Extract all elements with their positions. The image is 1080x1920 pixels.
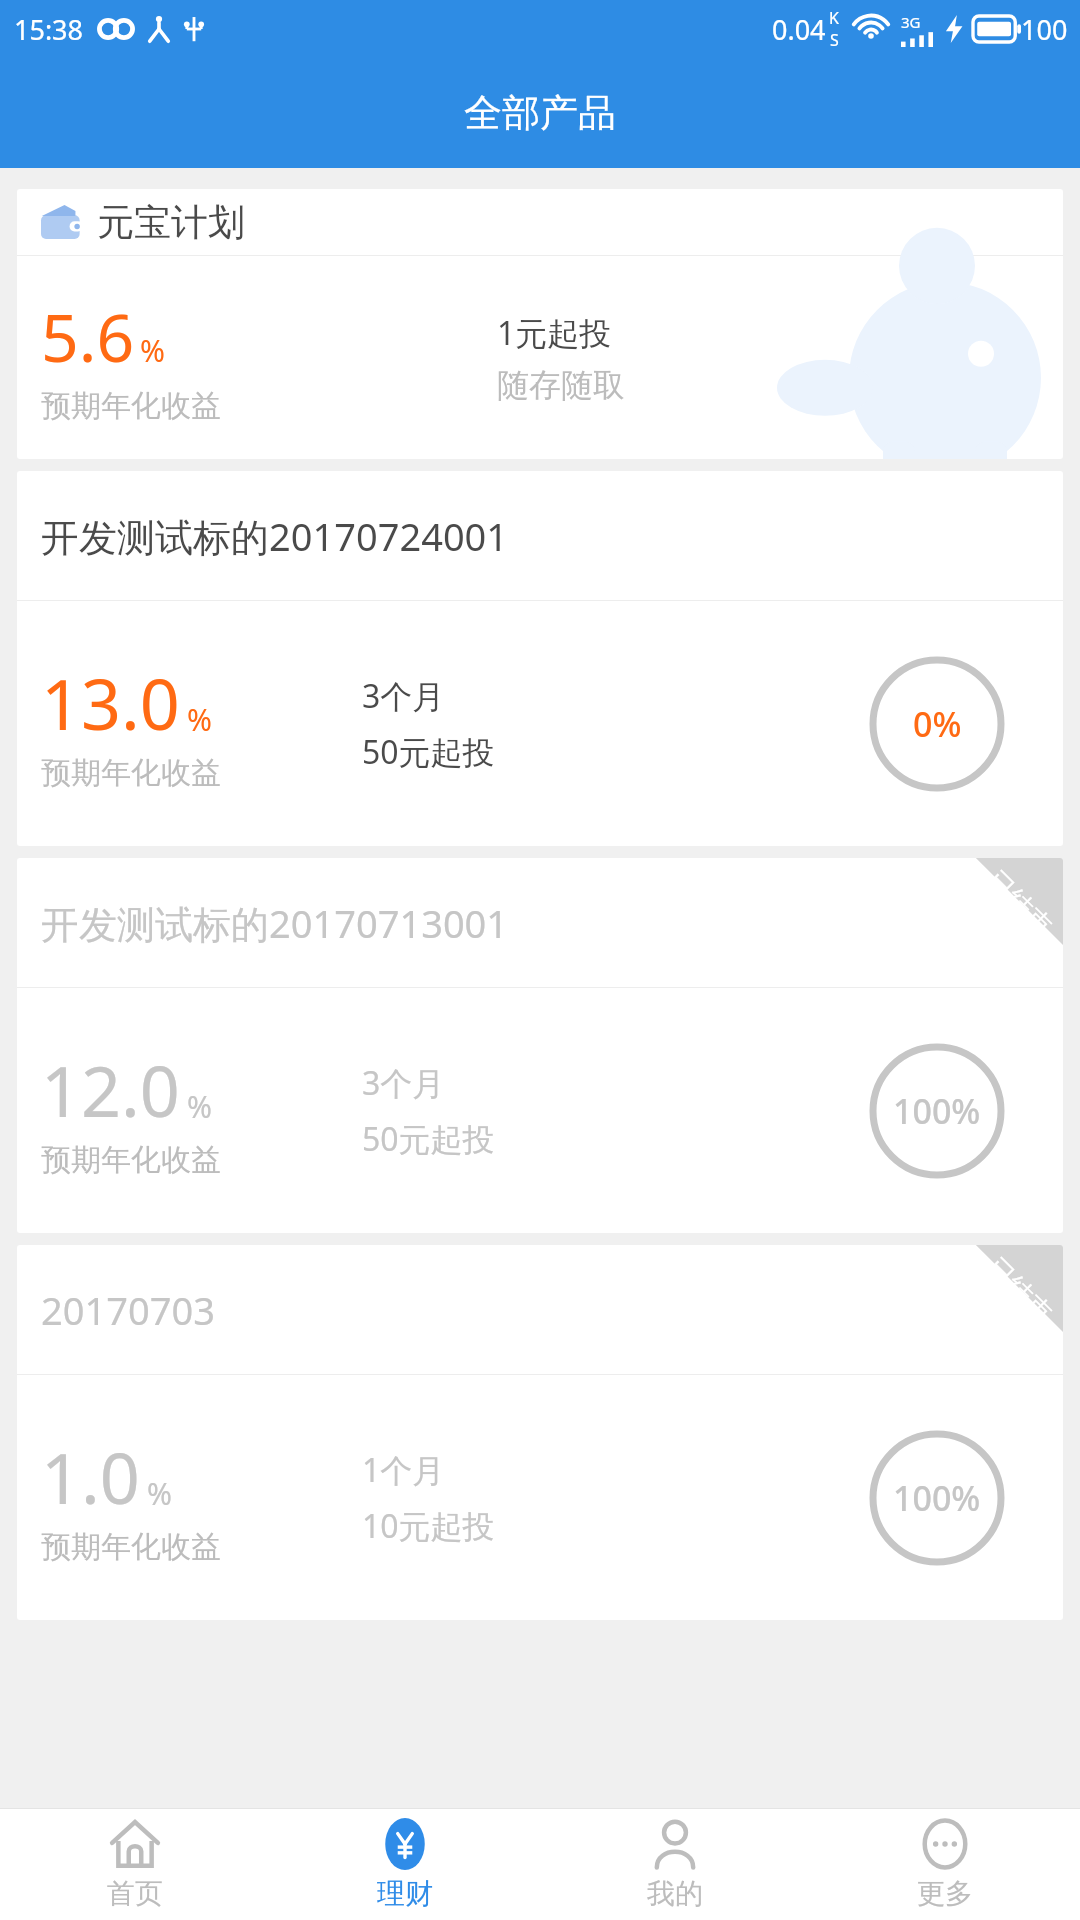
staticText: 0.04 <box>772 11 826 48</box>
staticText: 13.0 <box>41 655 180 750</box>
other: 理财 <box>379 1818 431 1870</box>
button[interactable]: 更多 <box>810 1809 1080 1920</box>
staticText: 1.0 <box>41 1429 140 1524</box>
staticText: 更多 <box>917 1876 973 1911</box>
staticText: % <box>187 1086 212 1127</box>
button[interactable]: 开发测试标的20170713001 <box>17 858 1063 1233</box>
staticText: 开发测试标的20170713001 <box>41 897 509 949</box>
staticText: 预期年化收益 <box>41 1528 221 1566</box>
other: 首页 <box>109 1818 161 1870</box>
button[interactable]: 20170703 <box>17 1245 1063 1620</box>
staticText: 我的 <box>647 1876 703 1911</box>
button[interactable]: 我的 <box>540 1809 810 1920</box>
staticText: 预期年化收益 <box>41 1141 221 1179</box>
other: 我的 <box>649 1818 701 1870</box>
staticText: 50元起投 <box>362 730 495 774</box>
button[interactable]: 元宝计划 <box>17 189 1063 459</box>
staticText: 3个月 <box>362 674 445 718</box>
staticText: 预期年化收益 <box>41 387 221 425</box>
staticText: 15:38 <box>14 11 84 48</box>
staticText: 已结束 <box>980 864 1058 943</box>
staticText: 元宝计划 <box>97 199 245 246</box>
staticText: 1元起投 <box>497 311 612 355</box>
button[interactable]: 开发测试标的20170724001 <box>17 471 1063 846</box>
staticText: % <box>187 699 212 740</box>
staticText: 100% <box>893 1475 981 1521</box>
staticText: 10元起投 <box>362 1504 495 1548</box>
other: 更多 <box>919 1818 971 1870</box>
staticText: 首页 <box>107 1876 163 1911</box>
staticText: 已结束 <box>980 1251 1058 1330</box>
staticText: 3G <box>901 12 921 32</box>
staticText: 50元起投 <box>362 1117 495 1161</box>
staticText: 随存随取 <box>497 365 625 405</box>
staticText: 1个月 <box>362 1448 445 1492</box>
staticText: 12.0 <box>41 1042 180 1137</box>
staticText: 3个月 <box>362 1061 445 1105</box>
staticText: % <box>147 1473 172 1514</box>
staticText: 20170703 <box>41 1284 215 1336</box>
staticText: S <box>830 29 839 51</box>
staticText: 全部产品 <box>464 89 616 137</box>
staticText: % <box>140 330 165 371</box>
staticText: 开发测试标的20170724001 <box>41 510 509 562</box>
staticText: 5.6 <box>41 291 135 381</box>
staticText: 100% <box>893 1088 981 1134</box>
staticText: K <box>829 7 839 29</box>
staticText: 理财 <box>377 1876 433 1911</box>
staticText: 100 <box>1021 11 1068 48</box>
button[interactable]: 理财 <box>270 1809 540 1920</box>
button[interactable]: 首页 <box>0 1809 270 1920</box>
staticText: 0% <box>913 701 962 747</box>
staticText: 预期年化收益 <box>41 754 221 792</box>
